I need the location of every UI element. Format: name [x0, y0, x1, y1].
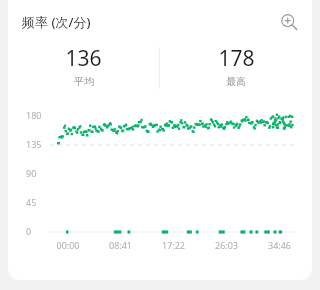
staticText: 08:41	[94, 239, 147, 251]
staticText: 178	[218, 44, 255, 73]
staticText: 45	[26, 196, 48, 208]
staticText: 最高	[226, 75, 246, 88]
staticText: 34:46	[253, 239, 306, 251]
staticText: 136	[65, 44, 102, 73]
button[interactable]: Zoom in	[276, 9, 302, 35]
button[interactable]: 178	[160, 44, 312, 88]
staticText: 26:03	[200, 239, 253, 251]
staticText: 17:22	[147, 239, 200, 251]
staticText: 0	[26, 225, 48, 237]
staticText: 00:00	[42, 239, 94, 251]
staticText: 平均	[74, 75, 94, 88]
staticText: 180	[26, 109, 48, 121]
staticText: 90	[26, 167, 48, 179]
button[interactable]: 136	[8, 44, 159, 88]
staticText: 135	[26, 138, 48, 150]
staticText: 频率 (次/分)	[22, 13, 91, 31]
